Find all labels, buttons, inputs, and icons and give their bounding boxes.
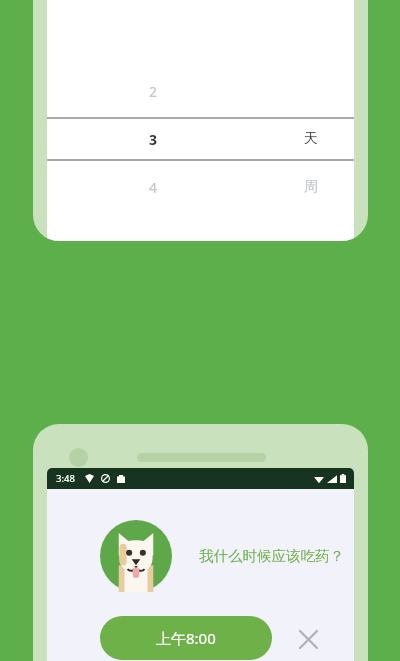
staticText: 2 xyxy=(149,82,158,101)
button[interactable]: 周 xyxy=(297,175,325,199)
staticText: 上午8:00 xyxy=(156,628,216,648)
button[interactable]: 4 xyxy=(139,175,167,199)
staticText: 3 xyxy=(149,130,158,149)
staticText: 周 xyxy=(304,178,318,196)
staticText: 我什么时候应该吃药？ xyxy=(199,547,344,565)
staticText: 4 xyxy=(149,178,158,197)
button[interactable]: 上午8:00 xyxy=(100,616,272,660)
staticText: 3:48 xyxy=(56,472,75,485)
staticText: 天 xyxy=(304,130,318,148)
button[interactable]: 天 xyxy=(297,127,325,151)
button[interactable]: Dismiss xyxy=(293,624,323,654)
button[interactable]: 2 xyxy=(139,79,167,103)
button[interactable]: 3 xyxy=(139,127,167,151)
